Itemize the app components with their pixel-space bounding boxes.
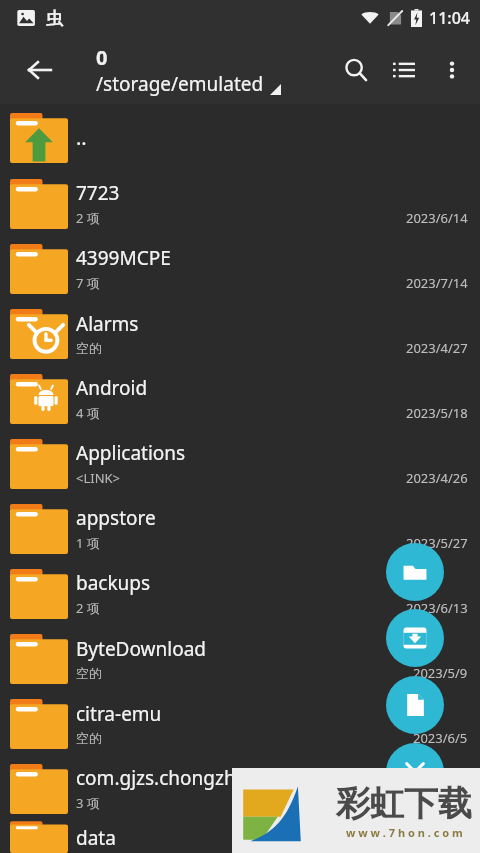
staticText: .. — [76, 124, 87, 151]
staticText: w w w . 7 h o n . c o m — [346, 825, 463, 840]
button[interactable]: Applications — [0, 430, 480, 495]
button[interactable]: Search — [332, 46, 380, 94]
button[interactable]: View mode — [380, 46, 428, 94]
staticText: 7 项 — [76, 274, 100, 292]
staticText: backups — [76, 570, 151, 596]
button[interactable]: 7723 — [0, 170, 480, 235]
button[interactable]: appstore — [0, 495, 480, 560]
staticText: 2023/5/18 — [406, 404, 468, 422]
staticText: 3 项 — [76, 794, 100, 812]
staticText: data — [76, 825, 116, 851]
button[interactable]: .. — [0, 104, 480, 170]
button[interactable]: More options — [428, 46, 476, 94]
staticText: 2023/6/13 — [406, 599, 468, 617]
staticText: 11:04 — [429, 7, 470, 29]
staticText: 2 项 — [76, 599, 100, 617]
button[interactable]: Android — [0, 365, 480, 430]
staticText: Applications — [76, 440, 186, 466]
staticText: appstore — [76, 505, 156, 531]
button[interactable]: Alarms — [0, 300, 480, 365]
staticText: 2023/4/27 — [406, 339, 468, 357]
button[interactable]: Download — [386, 609, 444, 667]
staticText: 2023/4/26 — [406, 469, 468, 487]
staticText: <LINK> — [76, 469, 121, 487]
staticText: 彩虹下载 — [336, 782, 472, 825]
button[interactable]: New folder — [386, 543, 444, 601]
staticText: 2023/6/14 — [406, 209, 468, 227]
staticText: 空的 — [76, 340, 102, 356]
staticText: 空的 — [76, 730, 102, 746]
staticText: 1 项 — [76, 534, 100, 552]
staticText: 2023/5/9 — [413, 664, 468, 682]
staticText: Alarms — [76, 311, 139, 337]
staticText: 4399MCPE — [76, 245, 171, 271]
staticText: 虫 — [46, 8, 63, 29]
staticText: 2023/7/14 — [406, 274, 468, 292]
staticText: 空的 — [76, 665, 102, 681]
button[interactable]: citra-emu — [0, 690, 480, 755]
staticText: 2023/6/5 — [413, 729, 468, 747]
staticText: /storage/emulated — [96, 71, 264, 97]
staticText: com.gjzs.chongzhi — [76, 765, 241, 791]
button[interactable]: ByteDownload — [0, 625, 480, 690]
button[interactable]: Close — [386, 743, 444, 801]
staticText: citra-emu — [76, 701, 162, 727]
staticText: 0 — [96, 44, 108, 71]
staticText: 7723 — [76, 180, 120, 206]
button[interactable]: com.gjzs.chongzhi — [0, 755, 480, 820]
button[interactable]: data — [0, 820, 480, 853]
staticText: 2 项 — [76, 209, 100, 227]
staticText: 2023/5/27 — [406, 534, 468, 552]
button[interactable]: backups — [0, 560, 480, 625]
button[interactable]: 0 — [96, 44, 281, 97]
staticText: Android — [76, 375, 148, 401]
staticText: 4 项 — [76, 404, 100, 422]
button[interactable]: New file — [386, 676, 444, 734]
staticText: ByteDownload — [76, 636, 207, 662]
button[interactable]: 4399MCPE — [0, 235, 480, 300]
button[interactable]: Back — [16, 46, 64, 94]
